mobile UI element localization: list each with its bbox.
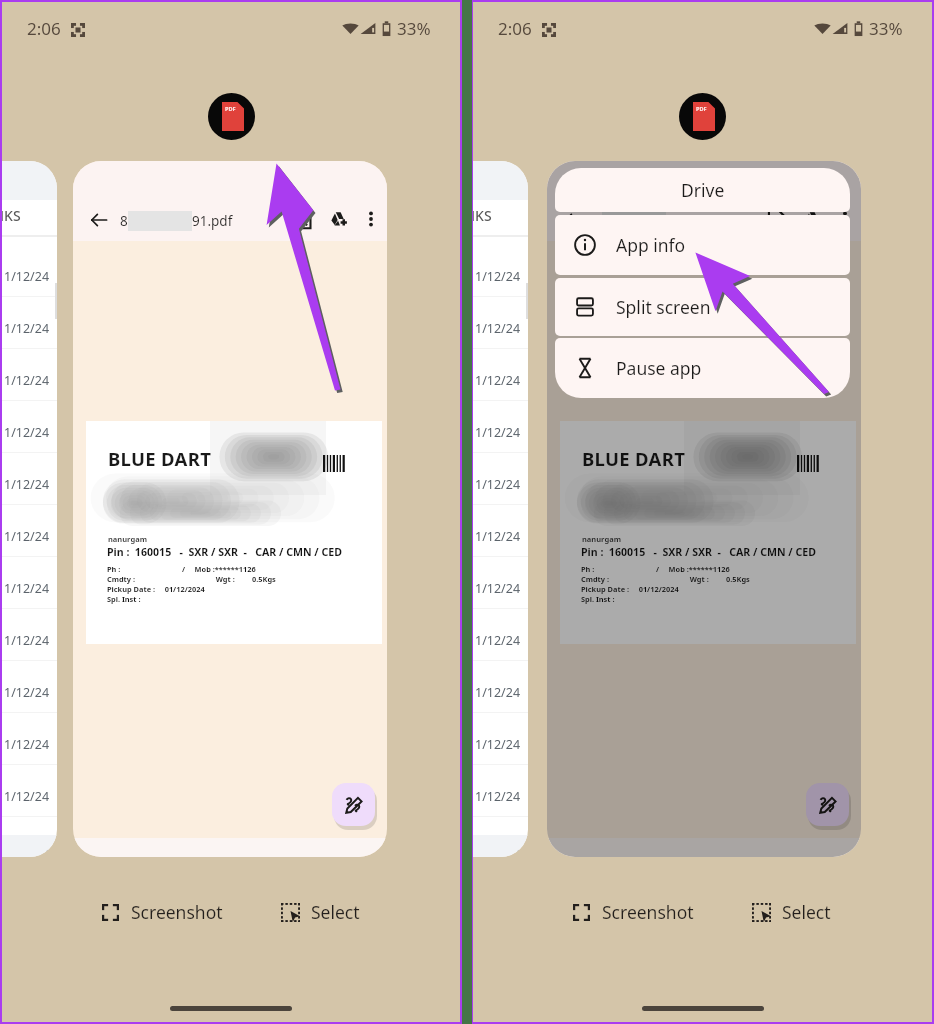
staticText: 1/12/24 bbox=[475, 476, 521, 493]
staticText: 1/12/24 bbox=[475, 528, 521, 545]
staticText: 1/12/24 bbox=[4, 528, 50, 545]
staticText: 1/12/24 bbox=[475, 580, 521, 597]
staticText: Pin : 160015 - SXR / SXR - CAR / CMN / C… bbox=[581, 545, 817, 559]
button[interactable]: Select bbox=[281, 887, 360, 937]
button[interactable]: App info bbox=[555, 215, 850, 275]
button[interactable]: More options bbox=[835, 209, 855, 229]
staticText: Drive bbox=[681, 178, 725, 202]
staticText: nanurgam bbox=[108, 534, 147, 544]
staticText: 2:06 bbox=[498, 17, 532, 40]
staticText: BLUE DART bbox=[108, 446, 212, 471]
button[interactable]: Edit bbox=[332, 783, 375, 826]
staticText: 33% bbox=[869, 17, 903, 40]
staticText: 1/12/24 bbox=[4, 372, 50, 389]
button[interactable]: Back bbox=[73, 161, 387, 857]
staticText: 1/12/24 bbox=[475, 320, 521, 337]
staticText: 1/12/24 bbox=[4, 580, 50, 597]
button[interactable]: Pause app bbox=[555, 338, 850, 398]
button[interactable]: Back bbox=[89, 210, 109, 230]
staticText: 8 bbox=[594, 212, 602, 230]
staticText: 1/12/24 bbox=[4, 684, 50, 701]
staticText: Pickup Date : 01/12/2024 bbox=[581, 584, 679, 594]
staticText: 91.pdf bbox=[666, 212, 707, 230]
staticText: BLUE DART bbox=[582, 446, 686, 471]
staticText: 1/12/24 bbox=[475, 840, 521, 857]
staticText: 1/12/24 bbox=[475, 788, 521, 805]
staticText: Pause app bbox=[616, 356, 702, 380]
button[interactable]: Screenshot bbox=[102, 887, 223, 937]
button[interactable]: Search bbox=[292, 209, 313, 230]
staticText: PDF bbox=[696, 105, 707, 112]
staticText: Select bbox=[311, 900, 360, 924]
staticText: 1/12/24 bbox=[475, 268, 521, 285]
button[interactable]: Edit bbox=[806, 783, 849, 826]
staticText: 1/12/24 bbox=[475, 684, 521, 701]
staticText: 91.pdf bbox=[192, 212, 233, 230]
button[interactable]: Search bbox=[766, 209, 787, 230]
staticText: ANKS bbox=[473, 206, 492, 225]
staticText: 1/12/24 bbox=[4, 476, 50, 493]
button[interactable]: Drive bbox=[555, 168, 850, 212]
staticText: Ph : / Mob :******1126 bbox=[581, 564, 730, 574]
button[interactable]: Drive PDF app bbox=[679, 93, 726, 140]
staticText: nanurgam bbox=[582, 534, 621, 544]
staticText: Pickup Date : 01/12/2024 bbox=[107, 584, 205, 594]
staticText: 1/12/24 bbox=[4, 736, 50, 753]
staticText: 1/12/24 bbox=[475, 372, 521, 389]
staticText: Ph : / Mob :******1126 bbox=[107, 564, 256, 574]
staticText: 1/12/24 bbox=[4, 268, 50, 285]
staticText: App info bbox=[616, 233, 686, 257]
staticText: Pin : 160015 - SXR / SXR - CAR / CMN / C… bbox=[107, 545, 343, 559]
staticText: 1/12/24 bbox=[475, 424, 521, 441]
staticText: 1/12/24 bbox=[4, 840, 50, 857]
button[interactable]: ANKS bbox=[473, 161, 528, 857]
staticText: Spl. Inst : bbox=[581, 594, 615, 604]
staticText: 1/12/24 bbox=[475, 632, 521, 649]
staticText: Spl. Inst : bbox=[107, 594, 141, 604]
button[interactable]: Save to Drive bbox=[328, 209, 349, 230]
staticText: ANKS bbox=[2, 206, 21, 225]
staticText: 33% bbox=[397, 17, 431, 40]
button[interactable]: ANKS bbox=[2, 161, 57, 857]
staticText: Select bbox=[782, 900, 831, 924]
button[interactable]: Screenshot bbox=[573, 887, 694, 937]
button[interactable]: Back bbox=[547, 161, 861, 857]
button[interactable]: Save to Drive bbox=[802, 209, 823, 230]
staticText: Screenshot bbox=[602, 900, 694, 924]
button[interactable]: Split screen bbox=[555, 278, 850, 336]
staticText: 1/12/24 bbox=[4, 424, 50, 441]
staticText: 2:06 bbox=[27, 17, 61, 40]
staticText: 1/12/24 bbox=[4, 320, 50, 337]
staticText: 8 bbox=[120, 212, 128, 230]
staticText: 1/12/24 bbox=[4, 788, 50, 805]
staticText: Split screen bbox=[616, 295, 711, 319]
button[interactable]: Select bbox=[752, 887, 831, 937]
staticText: 1/12/24 bbox=[475, 736, 521, 753]
button[interactable]: More options bbox=[361, 209, 381, 229]
button[interactable]: Back bbox=[563, 210, 583, 230]
staticText: Cmdty : Wgt : 0.5Kgs bbox=[107, 574, 276, 584]
staticText: Cmdty : Wgt : 0.5Kgs bbox=[581, 574, 750, 584]
staticText: Screenshot bbox=[131, 900, 223, 924]
staticText: 1/12/24 bbox=[4, 632, 50, 649]
staticText: PDF bbox=[225, 105, 236, 112]
button[interactable]: Drive PDF app bbox=[208, 93, 255, 140]
